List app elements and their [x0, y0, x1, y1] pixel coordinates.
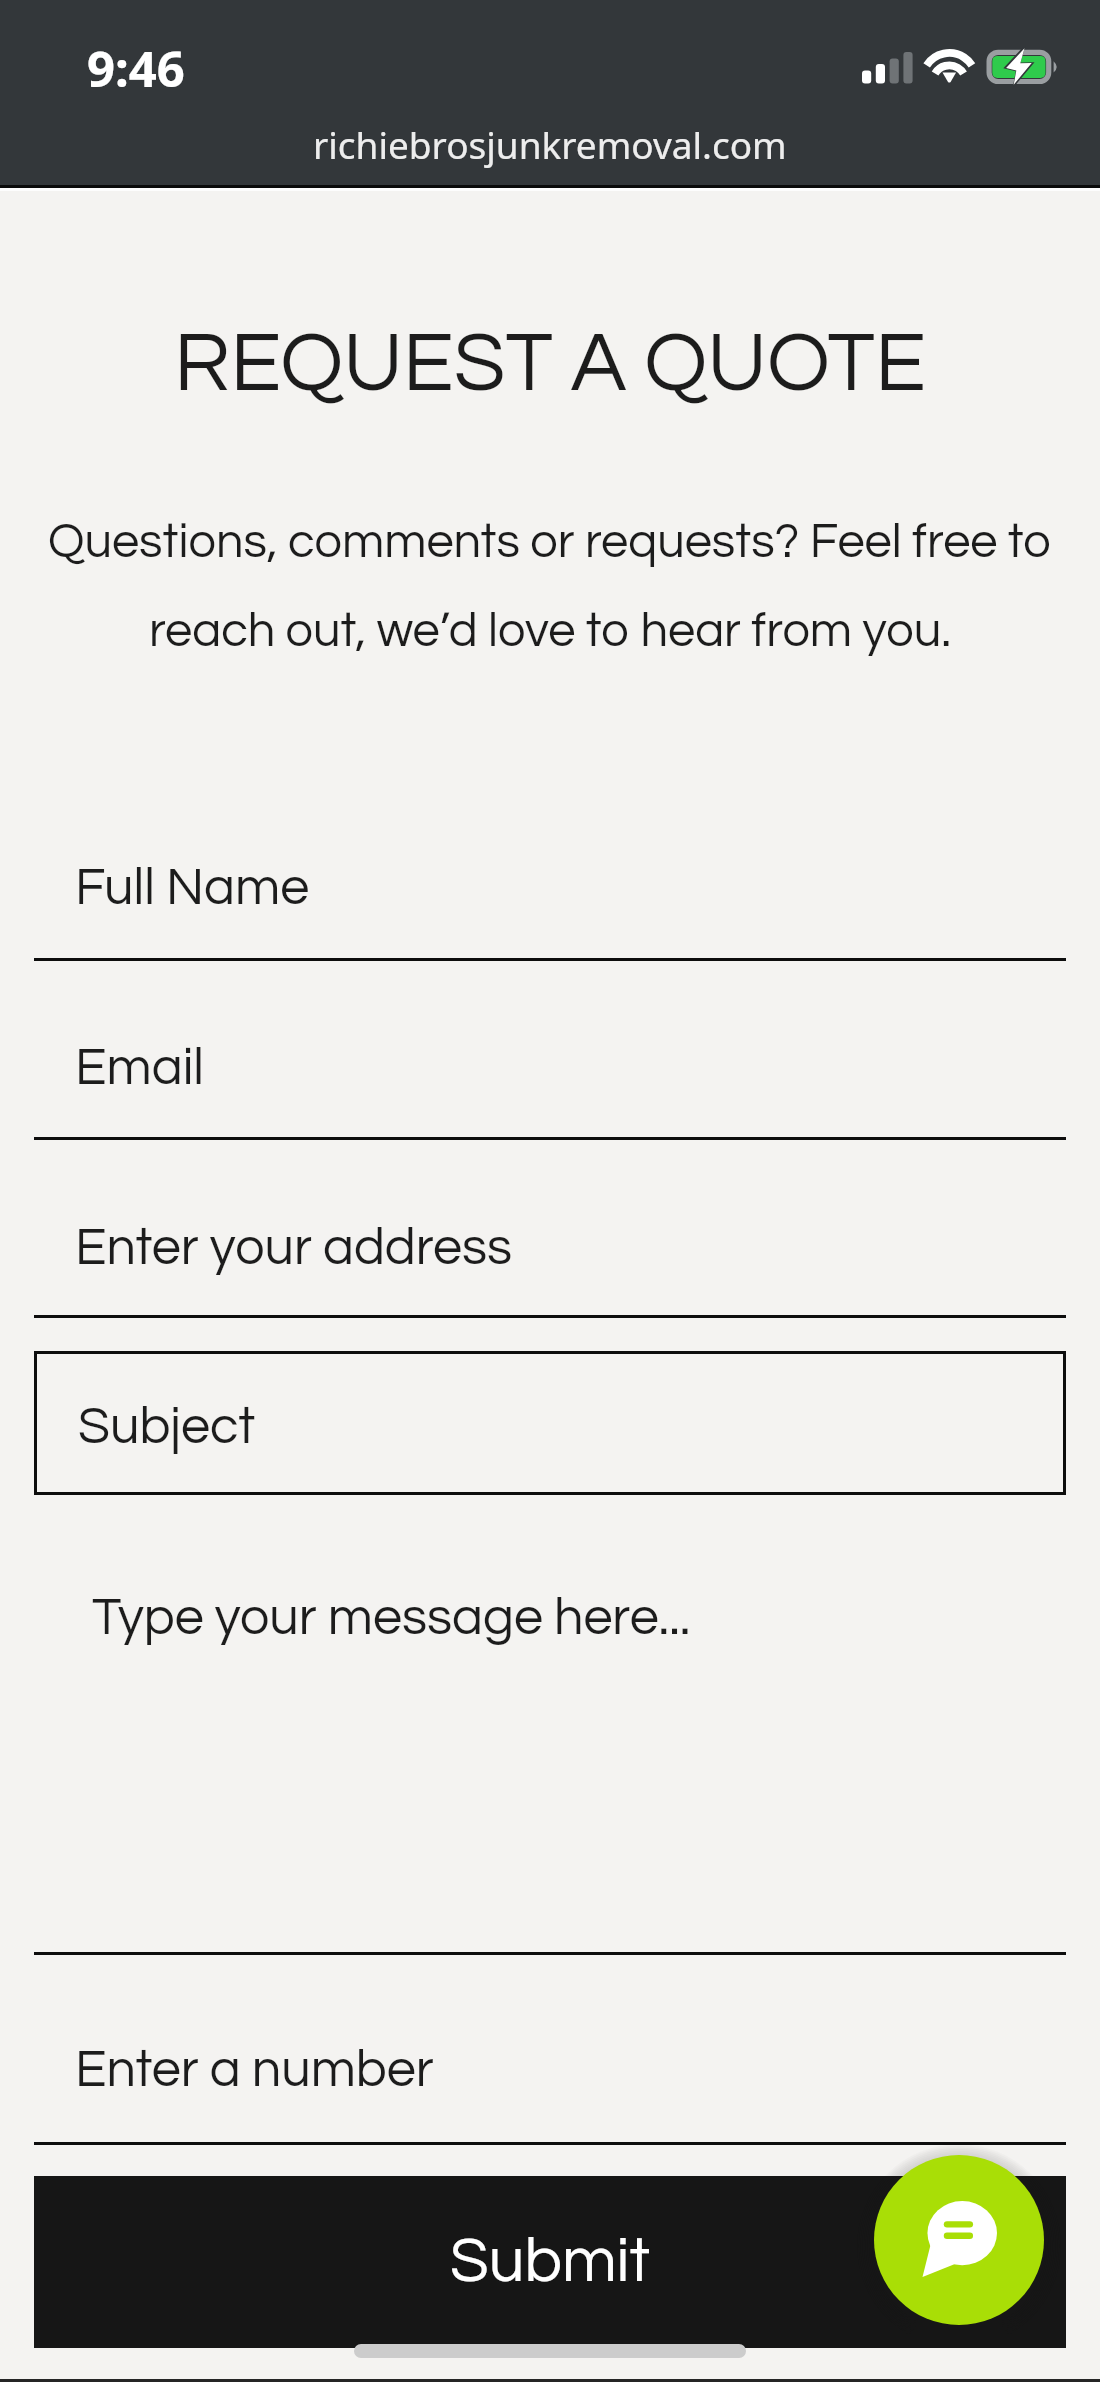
- staticText: Enter a number: [75, 2043, 434, 2097]
- staticText: richiebrosjunkremoval.com: [313, 119, 787, 169]
- button[interactable]: Submit: [34, 2176, 1066, 2348]
- staticText: 9:46: [87, 35, 185, 102]
- staticText: Submit: [450, 2229, 651, 2294]
- button[interactable]: Subject: [37, 1354, 1063, 1492]
- staticText: Enter your address: [75, 1221, 513, 1275]
- staticText: Questions, comments or requests? Feel fr…: [26, 517, 1074, 656]
- button[interactable]: Enter a number: [34, 2017, 1066, 2145]
- staticText: Full Name: [75, 861, 310, 915]
- button[interactable]: Open chat: [874, 2155, 1044, 2325]
- staticText: Email: [75, 1041, 205, 1095]
- button[interactable]: Email: [34, 1015, 1066, 1140]
- button[interactable]: Full Name: [34, 835, 1066, 961]
- button[interactable]: Enter your address: [34, 1195, 1066, 1318]
- button[interactable]: Type your message here...: [34, 1530, 1066, 1955]
- staticText: Type your message here...: [92, 1591, 691, 1645]
- staticText: Subject: [78, 1400, 256, 1454]
- staticText: REQUEST A QUOTE: [0, 321, 1100, 408]
